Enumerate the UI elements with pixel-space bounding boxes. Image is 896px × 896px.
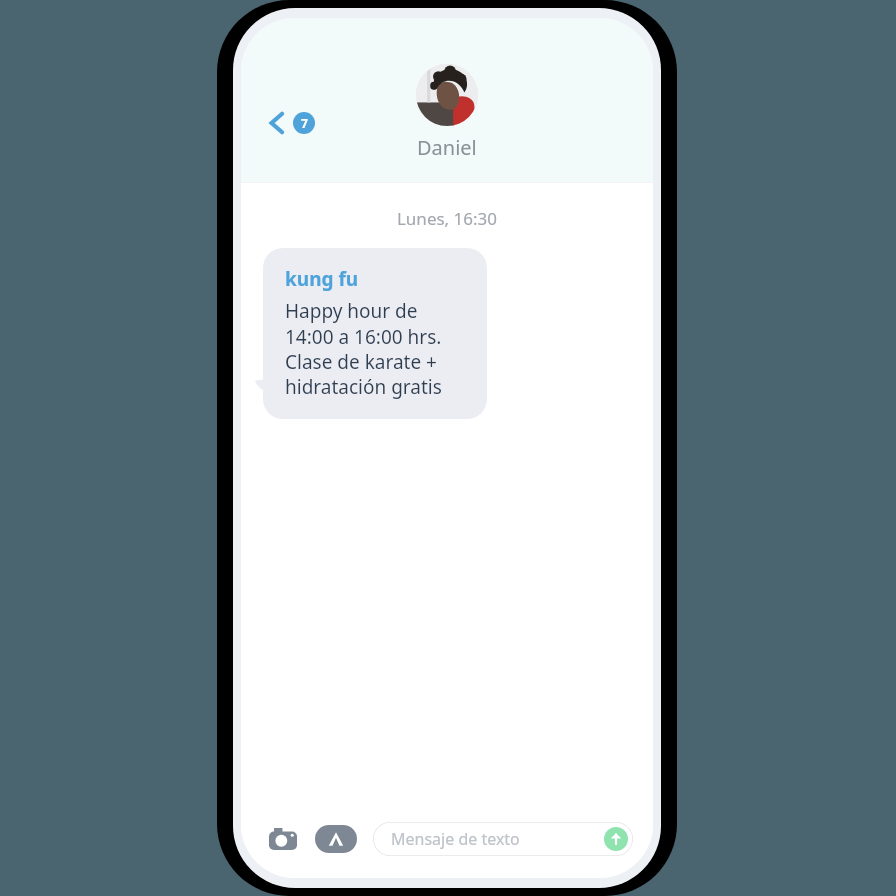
button[interactable]: Apps [315, 825, 357, 853]
button[interactable]: Camera [263, 819, 303, 859]
staticText: 7 [301, 115, 308, 131]
staticText: kung fu [285, 266, 359, 292]
staticText: Lunes, 16:30 [241, 207, 653, 230]
button[interactable]: Mensaje de texto [373, 822, 633, 856]
staticText: Daniel [417, 134, 477, 161]
other: Profile photo of Daniel [416, 64, 478, 126]
staticText: Mensaje de texto [391, 828, 520, 850]
button[interactable]: Back, 7 unread [261, 106, 323, 140]
button[interactable]: Profile photo of Daniel [406, 62, 488, 163]
button[interactable]: Send [604, 827, 628, 851]
button[interactable]: kung fu [263, 248, 487, 419]
staticText: Happy hour de 14:00 a 16:00 hrs. Clase d… [285, 298, 469, 399]
